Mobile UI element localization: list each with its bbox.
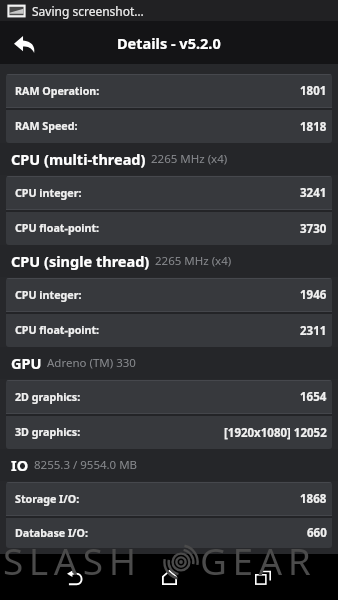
button[interactable]: CPU float-point:: [6, 314, 332, 347]
button[interactable]: Back: [47, 558, 103, 596]
staticText: 3730: [300, 221, 327, 237]
button[interactable]: Back: [0, 21, 48, 64]
staticText: CPU integer:: [15, 186, 82, 201]
staticText: Details - v5.2.0: [117, 33, 221, 53]
staticText: CPU float-point:: [15, 221, 100, 236]
button[interactable]: 3D graphics:: [6, 416, 332, 449]
staticText: Saving screenshot…: [32, 3, 144, 19]
button[interactable]: Database I/O:: [6, 518, 332, 548]
staticText: RAM Speed:: [15, 119, 78, 134]
staticText: 1868: [300, 491, 327, 507]
staticText: 3241: [300, 185, 327, 201]
staticText: IO: [11, 455, 29, 475]
button[interactable]: 2D graphics:: [6, 381, 332, 413]
button[interactable]: Storage I/O:: [6, 483, 332, 515]
staticText: 8255.3 / 9554.0 MB: [34, 457, 138, 473]
button[interactable]: CPU integer:: [6, 279, 332, 311]
staticText: 2D graphics:: [15, 390, 81, 405]
staticText: [1920x1080] 12052: [224, 425, 327, 441]
staticText: Storage I/O:: [15, 492, 80, 507]
staticText: CPU float-point:: [15, 323, 100, 338]
staticText: CPU (multi-thread): [11, 149, 146, 169]
staticText: SLASH: [3, 535, 142, 585]
button[interactable]: RAM Operation:: [6, 75, 332, 107]
staticText: CPU (single thread): [11, 251, 150, 271]
button[interactable]: Home: [141, 558, 197, 596]
button[interactable]: RAM Speed:: [6, 110, 332, 143]
staticText: GPU: [11, 353, 42, 373]
staticText: 2311: [300, 323, 327, 339]
staticText: 1946: [300, 287, 327, 303]
staticText: CPU integer:: [15, 288, 82, 303]
button[interactable]: CPU float-point:: [6, 212, 332, 245]
staticText: 2265 MHz (x4): [155, 253, 232, 269]
staticText: Database I/O:: [15, 526, 88, 541]
staticText: 660: [307, 525, 327, 541]
staticText: 1818: [300, 119, 327, 135]
staticText: RAM Operation:: [15, 84, 100, 99]
button[interactable]: Recent apps: [235, 558, 291, 596]
staticText: 2265 MHz (x4): [151, 151, 228, 167]
staticText: Adreno (TM) 330: [47, 355, 136, 371]
staticText: GEAR: [200, 535, 317, 585]
button[interactable]: CPU integer:: [6, 177, 332, 209]
staticText: 3D graphics:: [15, 425, 81, 440]
staticText: 1801: [300, 83, 327, 99]
staticText: 1654: [300, 389, 327, 405]
